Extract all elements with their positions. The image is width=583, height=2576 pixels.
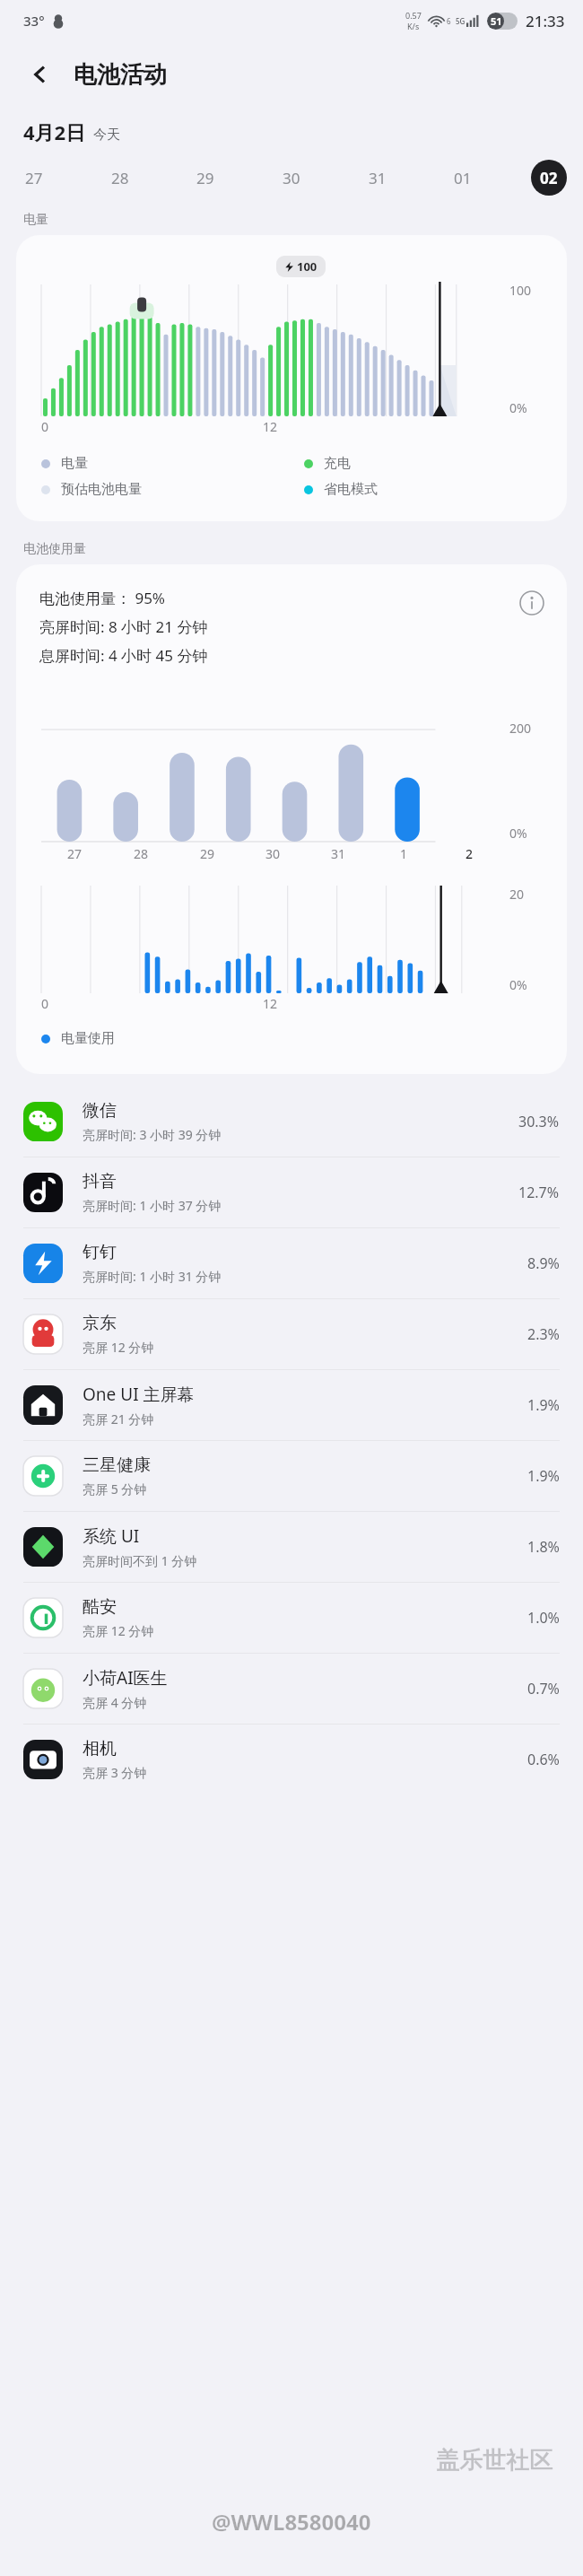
- staticText: 0: [41, 418, 49, 435]
- staticText: 0%: [509, 976, 527, 993]
- staticText: 12: [263, 418, 278, 435]
- staticText: 27: [67, 845, 83, 862]
- staticText: 电量使用: [61, 1030, 115, 1047]
- staticText: 今天: [93, 127, 120, 144]
- staticText: 100: [297, 258, 318, 275]
- staticText: 30.3%: [518, 1112, 560, 1131]
- staticText: 31: [331, 845, 346, 862]
- staticText: 亮屏 4 分钟: [83, 1694, 147, 1711]
- staticText: K/s: [407, 21, 420, 31]
- staticText: 省电模式: [324, 481, 378, 498]
- staticText: 8.9%: [527, 1253, 560, 1273]
- staticText: 31: [369, 168, 387, 188]
- button[interactable]: 钉钉: [0, 1228, 583, 1298]
- staticText: 0: [41, 995, 49, 1012]
- staticText: 0%: [509, 825, 527, 842]
- staticText: 30: [283, 168, 300, 188]
- button[interactable]: 抖音: [0, 1157, 583, 1227]
- staticText: One UI 主屏幕: [83, 1383, 195, 1406]
- button[interactable]: 27: [16, 160, 52, 196]
- staticText: 预估电池电量: [61, 481, 142, 498]
- staticText: 1.0%: [527, 1608, 560, 1628]
- staticText: 0.7%: [527, 1679, 560, 1698]
- staticText: 0.6%: [527, 1750, 560, 1769]
- staticText: 抖音: [83, 1171, 117, 1192]
- button[interactable]: 28: [102, 160, 138, 196]
- button[interactable]: 京东: [0, 1299, 583, 1369]
- button[interactable]: 02: [531, 160, 567, 196]
- staticText: 三星健康: [83, 1454, 151, 1476]
- staticText: 亮屏 21 分钟: [83, 1410, 154, 1428]
- button[interactable]: One UI 主屏幕: [0, 1370, 583, 1440]
- staticText: 盖乐世社区: [436, 2446, 553, 2476]
- staticText: 02: [540, 168, 558, 188]
- staticText: 1: [400, 845, 408, 862]
- button[interactable]: 小荷AI医生: [0, 1654, 583, 1724]
- button[interactable]: 酷安: [0, 1583, 583, 1653]
- staticText: 亮屏 12 分钟: [83, 1622, 154, 1639]
- staticText: 100: [509, 282, 532, 299]
- staticText: 息屏时间: 4 小时 45 分钟: [39, 645, 208, 666]
- staticText: 28: [134, 845, 149, 862]
- staticText: 5G: [456, 16, 466, 26]
- button[interactable]: 微信: [0, 1087, 583, 1157]
- staticText: 钉钉: [83, 1242, 117, 1263]
- button[interactable]: 三星健康: [0, 1441, 583, 1511]
- staticText: 30: [265, 845, 281, 862]
- staticText: 电池使用量： 95%: [39, 588, 165, 608]
- staticText: 29: [200, 845, 215, 862]
- button[interactable]: 01: [445, 160, 481, 196]
- staticText: 电池活动: [74, 60, 167, 90]
- button[interactable]: 相机: [0, 1725, 583, 1794]
- staticText: @WWL8580040: [212, 2507, 371, 2537]
- staticText: 20: [509, 886, 525, 903]
- staticText: 亮屏时间不到 1 分钟: [83, 1552, 197, 1569]
- staticText: 27: [25, 168, 43, 188]
- staticText: 1.8%: [527, 1537, 560, 1557]
- button[interactable]: 29: [187, 160, 223, 196]
- staticText: 51: [491, 14, 502, 28]
- staticText: 4月2日: [23, 118, 86, 145]
- staticText: 0%: [509, 399, 527, 416]
- staticText: 200: [509, 720, 532, 737]
- staticText: 33°: [23, 12, 45, 30]
- staticText: 亮屏 3 分钟: [83, 1764, 147, 1781]
- staticText: 小荷AI医生: [83, 1666, 168, 1690]
- staticText: 0.57: [405, 10, 422, 21]
- staticText: 28: [111, 168, 129, 188]
- staticText: 电量: [23, 212, 48, 228]
- staticText: 亮屏 5 分钟: [83, 1480, 147, 1498]
- staticText: 电量: [61, 455, 88, 472]
- button[interactable]: Back: [20, 54, 61, 95]
- staticText: 29: [196, 168, 214, 188]
- staticText: 01: [454, 168, 472, 188]
- button[interactable]: 系统 UI: [0, 1512, 583, 1582]
- button[interactable]: 31: [360, 160, 396, 196]
- staticText: 12: [263, 995, 278, 1012]
- staticText: 酷安: [83, 1596, 117, 1618]
- button[interactable]: 100: [16, 235, 567, 521]
- staticText: 亮屏时间: 1 小时 37 分钟: [83, 1197, 222, 1214]
- staticText: 京东: [83, 1313, 117, 1334]
- staticText: 充电: [324, 455, 351, 472]
- staticText: 2.3%: [527, 1324, 560, 1344]
- staticText: 微信: [83, 1100, 117, 1122]
- staticText: 系统 UI: [83, 1524, 140, 1548]
- staticText: 21:33: [526, 11, 565, 31]
- staticText: 1.9%: [527, 1466, 560, 1486]
- staticText: 亮屏时间: 8 小时 21 分钟: [39, 616, 208, 637]
- staticText: 亮屏 12 分钟: [83, 1339, 154, 1356]
- button[interactable]: Info: [517, 588, 547, 618]
- staticText: 电池使用量: [23, 541, 86, 557]
- staticText: 相机: [83, 1738, 117, 1760]
- staticText: 6: [447, 16, 451, 26]
- staticText: 亮屏时间: 3 小时 39 分钟: [83, 1126, 222, 1143]
- staticText: 2: [466, 845, 474, 862]
- staticText: 亮屏时间: 1 小时 31 分钟: [83, 1268, 222, 1285]
- staticText: 1.9%: [527, 1395, 560, 1415]
- staticText: 12.7%: [518, 1183, 560, 1202]
- button[interactable]: 30: [274, 160, 309, 196]
